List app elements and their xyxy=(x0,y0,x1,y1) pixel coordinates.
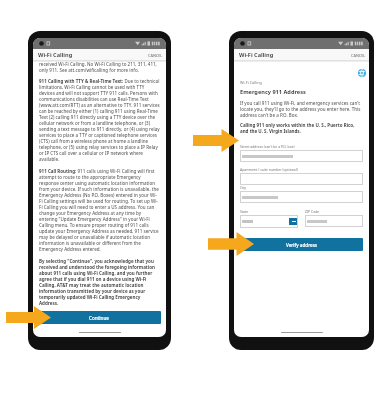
staticText: Wi-Fi Calling xyxy=(38,51,73,59)
button[interactable]: Continue xyxy=(38,311,161,324)
staticText: Street address (can't be a P.O. box) xyxy=(240,144,295,149)
staticText: City xyxy=(240,185,246,190)
staticText: Emergency 911 Address xyxy=(240,88,306,96)
button[interactable]: CANCEL xyxy=(347,53,369,58)
button[interactable] xyxy=(240,173,363,185)
staticText: CANCEL xyxy=(351,53,366,58)
staticText: received Wi-Fi Calling. No Wi-Fi Calling… xyxy=(39,61,160,73)
staticText: Continue xyxy=(89,315,110,321)
staticText: Wi-Fi Calling xyxy=(239,51,274,59)
staticText: 911 Call Routing: 911 calls using Wi-Fi … xyxy=(39,168,160,252)
staticText: Apartment / suite number (optional) xyxy=(240,167,298,172)
button[interactable]: Verify address xyxy=(240,238,363,251)
staticText: Calling 911 only works within the U. S.,… xyxy=(240,122,363,134)
button[interactable]: Language xyxy=(358,69,366,77)
staticText: If you call 911 using Wi-Fi, and emergen… xyxy=(240,100,363,118)
button[interactable] xyxy=(240,150,363,162)
button[interactable] xyxy=(305,215,363,227)
button[interactable] xyxy=(240,215,298,228)
staticText: State xyxy=(240,209,249,214)
staticText: Wi-Fi Calling xyxy=(240,80,262,85)
staticText: By selecting "Continue", you acknowledge… xyxy=(39,258,160,306)
staticText: 911 Calling with TTY & Real-Time Text: D… xyxy=(39,78,160,162)
button[interactable] xyxy=(240,191,363,203)
staticText: ZIP Code xyxy=(305,209,320,214)
button[interactable]: CANCEL xyxy=(144,53,166,58)
staticText: CANCEL xyxy=(148,53,163,58)
staticText: Verify address xyxy=(286,242,318,248)
